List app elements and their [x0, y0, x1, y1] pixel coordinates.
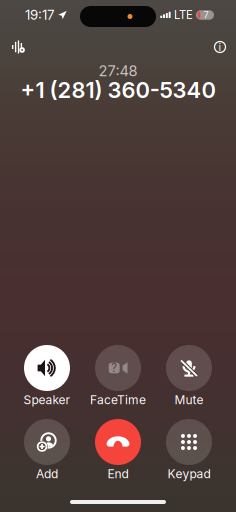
staticText: FaceTime [90, 393, 146, 407]
staticText: i [218, 40, 221, 53]
staticText: Mute [174, 393, 203, 407]
button[interactable]: ? [82, 345, 153, 409]
button[interactable]: End [82, 419, 153, 483]
staticText: Speaker [23, 393, 70, 407]
staticText: 27:48 [98, 62, 137, 80]
button[interactable]: Add [11, 419, 82, 483]
staticText: 7 [204, 10, 209, 20]
staticText: End [107, 467, 128, 481]
button[interactable]: Call details [210, 37, 230, 57]
staticText: Keypad [167, 467, 210, 481]
staticText: LTE [174, 8, 193, 22]
staticText: +1 (281) 360-5340 [20, 77, 215, 103]
staticText: Add [36, 467, 58, 481]
button[interactable]: Keypad [153, 419, 224, 483]
button[interactable]: Mute [153, 345, 224, 409]
staticText: ? [111, 361, 117, 375]
button[interactable]: Speaker [11, 345, 82, 409]
staticText: 19:17 [25, 7, 55, 23]
